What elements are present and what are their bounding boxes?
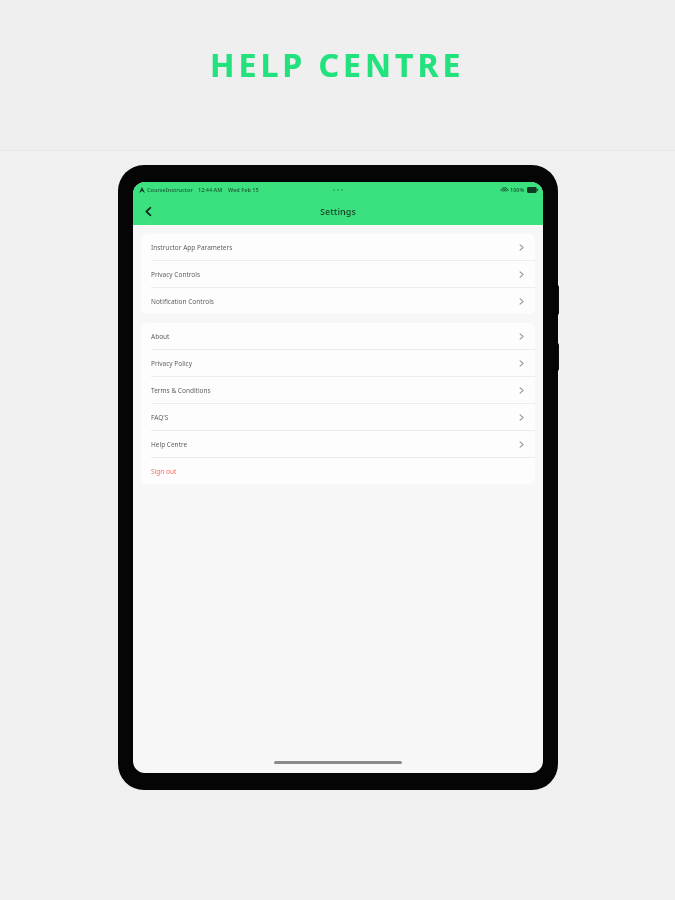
- button[interactable]: Back: [137, 200, 159, 222]
- staticText: Terms & Conditions: [151, 386, 211, 395]
- button[interactable]: Instructor App Parameters: [141, 234, 535, 260]
- staticText: CourseInstructor: [147, 186, 193, 193]
- button[interactable]: Sign out: [141, 458, 535, 484]
- staticText: About: [151, 332, 170, 341]
- button[interactable]: Terms & Conditions: [141, 377, 535, 403]
- button[interactable]: Privacy Controls: [141, 261, 535, 287]
- staticText: Notification Controls: [151, 297, 214, 306]
- staticText: Privacy Controls: [151, 270, 201, 279]
- staticText: Help Centre: [151, 440, 188, 449]
- staticText: 100%: [510, 186, 525, 193]
- staticText: 12:44 AM: [198, 186, 223, 193]
- button[interactable]: Privacy Policy: [141, 350, 535, 376]
- button[interactable]: Help Centre: [141, 431, 535, 457]
- staticText: HELP CENTRE: [210, 43, 465, 87]
- staticText: FAQ'S: [151, 413, 169, 422]
- staticText: Privacy Policy: [151, 359, 193, 368]
- staticText: Settings: [320, 205, 356, 217]
- button[interactable]: FAQ'S: [141, 404, 535, 430]
- staticText: Sign out: [151, 467, 177, 476]
- staticText: Instructor App Parameters: [151, 243, 233, 252]
- button[interactable]: About: [141, 323, 535, 349]
- staticText: Wed Feb 15: [228, 186, 259, 193]
- button[interactable]: Notification Controls: [141, 288, 535, 314]
